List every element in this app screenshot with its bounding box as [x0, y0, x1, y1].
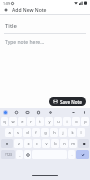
button[interactable]: b [51, 139, 59, 148]
button[interactable]: y [45, 117, 53, 126]
staticText: y [48, 119, 51, 124]
button[interactable]: w [9, 117, 17, 126]
button[interactable]: r [27, 117, 35, 126]
button[interactable]: Enter [76, 150, 89, 159]
button[interactable]: c [33, 139, 41, 148]
button[interactable]: Save Note [49, 97, 86, 106]
button[interactable]: t [36, 117, 44, 126]
staticText: u [57, 119, 60, 124]
button[interactable]: n [60, 139, 68, 148]
staticText: x [27, 141, 30, 146]
button[interactable]: z [14, 139, 23, 148]
staticText: w [11, 119, 15, 124]
button[interactable]: v [42, 139, 50, 148]
staticText: . [71, 152, 73, 157]
staticText: p [84, 119, 87, 124]
button[interactable]: a [5, 128, 13, 137]
staticText: d [26, 130, 29, 135]
button[interactable]: Shift [1, 139, 13, 148]
staticText: b [54, 141, 57, 146]
staticText: l [80, 130, 82, 135]
button[interactable]: s [14, 128, 22, 137]
button[interactable]: e [18, 117, 26, 126]
staticText: g [44, 130, 47, 135]
staticText: z [18, 141, 20, 146]
staticText: Add New Note [12, 7, 47, 14]
staticText: Save Note [60, 99, 82, 105]
button[interactable]: d [23, 128, 31, 137]
button[interactable]: i [63, 117, 71, 126]
button[interactable]: f [32, 128, 40, 137]
staticText: m [71, 141, 75, 146]
button[interactable]: Minimize [71, 110, 76, 115]
button[interactable]: Title [0, 19, 90, 34]
button[interactable]: x [24, 139, 32, 148]
button[interactable]: q [1, 117, 8, 126]
button[interactable]: m [69, 139, 77, 148]
staticText: i [66, 119, 68, 124]
staticText: r [30, 119, 32, 124]
button[interactable]: Type note here... [5, 39, 45, 46]
button[interactable]: Clipboard [36, 110, 41, 115]
button[interactable]: GIF [25, 110, 30, 115]
staticText: a [8, 130, 11, 135]
button[interactable]: o [72, 117, 80, 126]
button[interactable]: Emoji [14, 110, 19, 115]
staticText: n [63, 141, 66, 146]
staticText: v [45, 141, 48, 146]
staticText: e [21, 119, 24, 124]
staticText: k [71, 130, 74, 135]
button[interactable]: l [77, 128, 85, 137]
button[interactable]: Settings [48, 110, 53, 115]
button[interactable]: Backspace [78, 139, 89, 148]
staticText: j [62, 130, 64, 135]
button[interactable]: u [54, 117, 62, 126]
button[interactable]: Voice [82, 110, 87, 115]
button[interactable]: h [50, 128, 58, 137]
staticText: f [35, 130, 37, 135]
button[interactable]: ?123 [1, 150, 15, 159]
staticText: Title [5, 22, 17, 30]
staticText: c [36, 141, 38, 146]
staticText: h [53, 130, 56, 135]
button[interactable]: j [59, 128, 67, 137]
button[interactable]: Add [0, 6, 90, 14]
staticText: ?123 [5, 153, 12, 157]
staticText: 1:09 [3, 1, 10, 6]
staticText: o [75, 119, 78, 124]
button[interactable]: Google [3, 110, 8, 115]
staticText: q [3, 119, 6, 124]
staticText: t [39, 119, 41, 124]
button[interactable]: Emoji [24, 150, 31, 159]
button[interactable]: p [81, 117, 89, 126]
button[interactable]: k [68, 128, 76, 137]
staticText: s [17, 130, 19, 135]
other: Add [3, 7, 9, 13]
button[interactable]: , [16, 150, 23, 159]
button[interactable]: g [41, 128, 49, 137]
staticText: , [19, 152, 21, 157]
